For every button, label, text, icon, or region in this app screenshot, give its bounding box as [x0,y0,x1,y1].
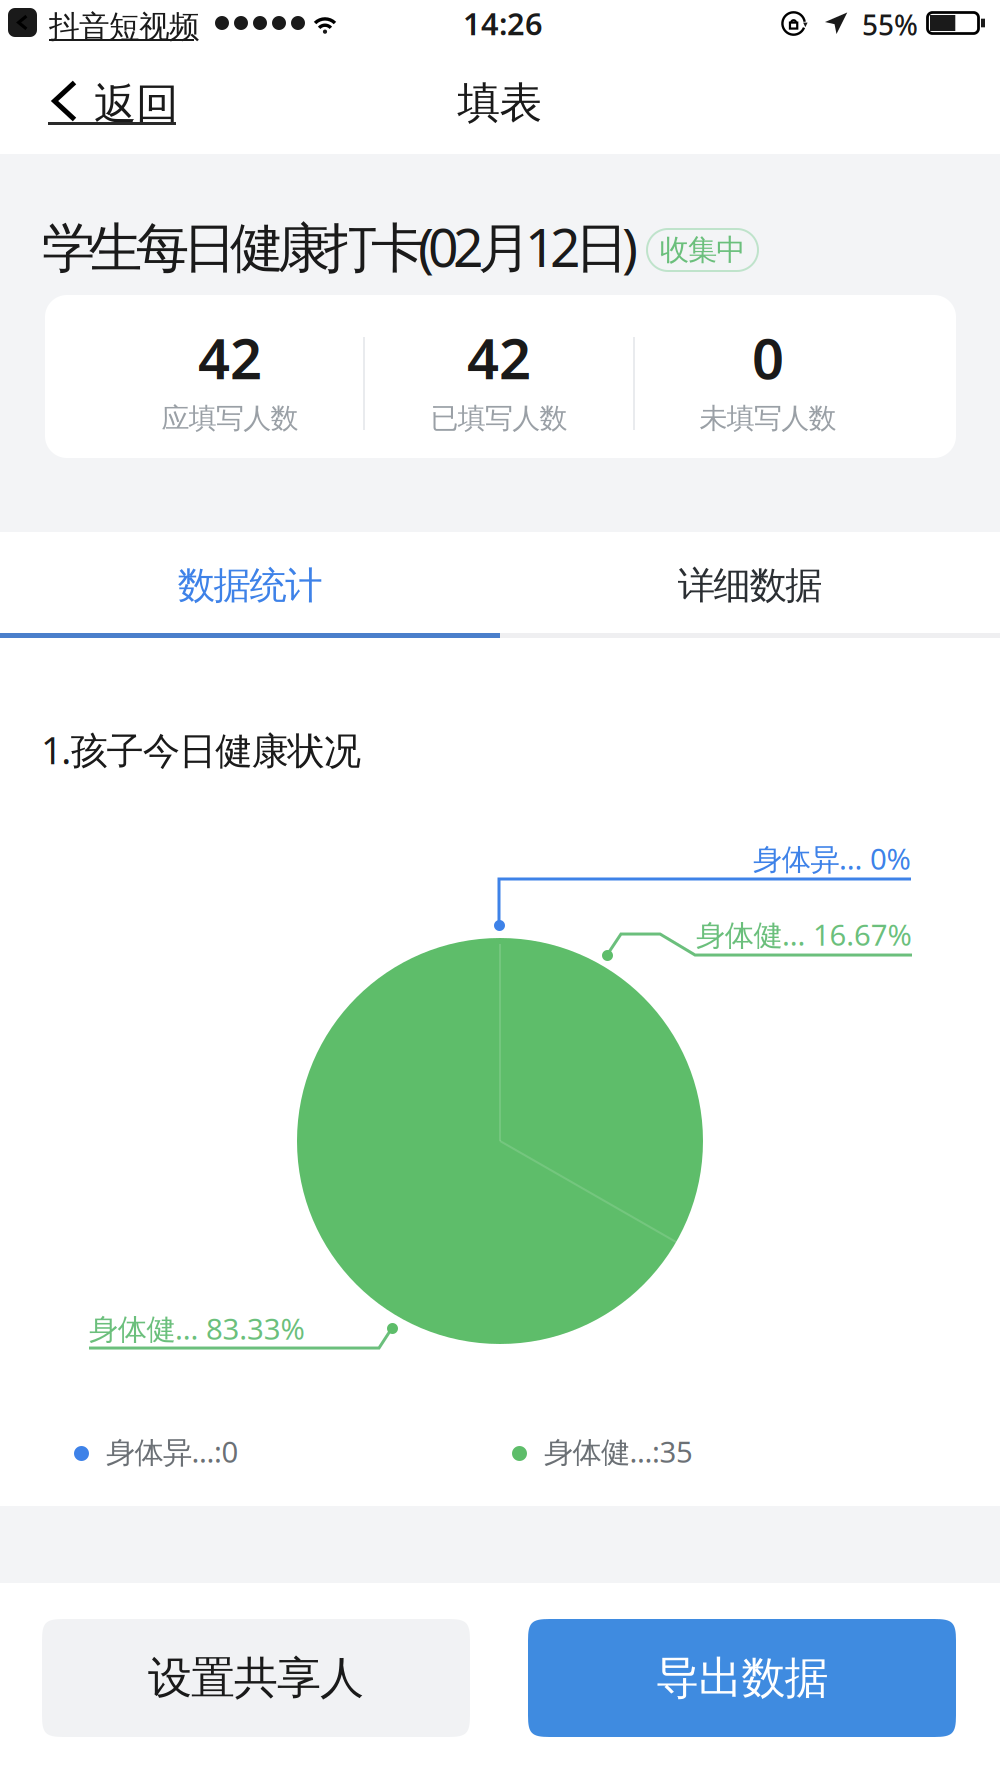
staticText: 55% [862,6,918,43]
staticText: 1.孩子今日健康状况 [41,725,361,775]
staticText: 已填写人数 [431,401,567,436]
button[interactable]: 详细数据 [500,535,1000,636]
staticText: 应填写人数 [162,401,298,436]
staticText: 导出数据 [655,1651,828,1705]
button[interactable]: 数据统计 [0,535,500,636]
staticText: 抖音短视频 [49,8,200,46]
staticText: 身体健...:35 [544,1432,693,1471]
staticText: 学生每日健康打卡(02月12日) [42,211,638,282]
button[interactable]: 抖音短视频 [8,4,198,44]
staticText: 填表 [457,77,542,129]
button[interactable]: 返回 [47,72,180,134]
staticText: 返回 [94,78,179,130]
staticText: 身体健... 16.67% [696,915,911,954]
staticText: 身体异...:0 [106,1432,238,1471]
staticText: 42 [467,320,531,395]
staticText: 设置共享人 [148,1651,364,1705]
button[interactable]: 导出数据 [528,1619,956,1737]
staticText: 14:26 [463,3,543,44]
staticText: 42 [198,320,262,395]
staticText: 收集中 [660,232,745,268]
staticText: 详细数据 [678,563,822,608]
staticText: 未填写人数 [700,401,836,436]
staticText: 数据统计 [178,563,322,608]
staticText: 0 [752,320,784,395]
button[interactable]: 设置共享人 [42,1619,470,1737]
staticText: 身体异... 0% [753,839,911,878]
staticText: 身体健... 83.33% [89,1309,304,1348]
